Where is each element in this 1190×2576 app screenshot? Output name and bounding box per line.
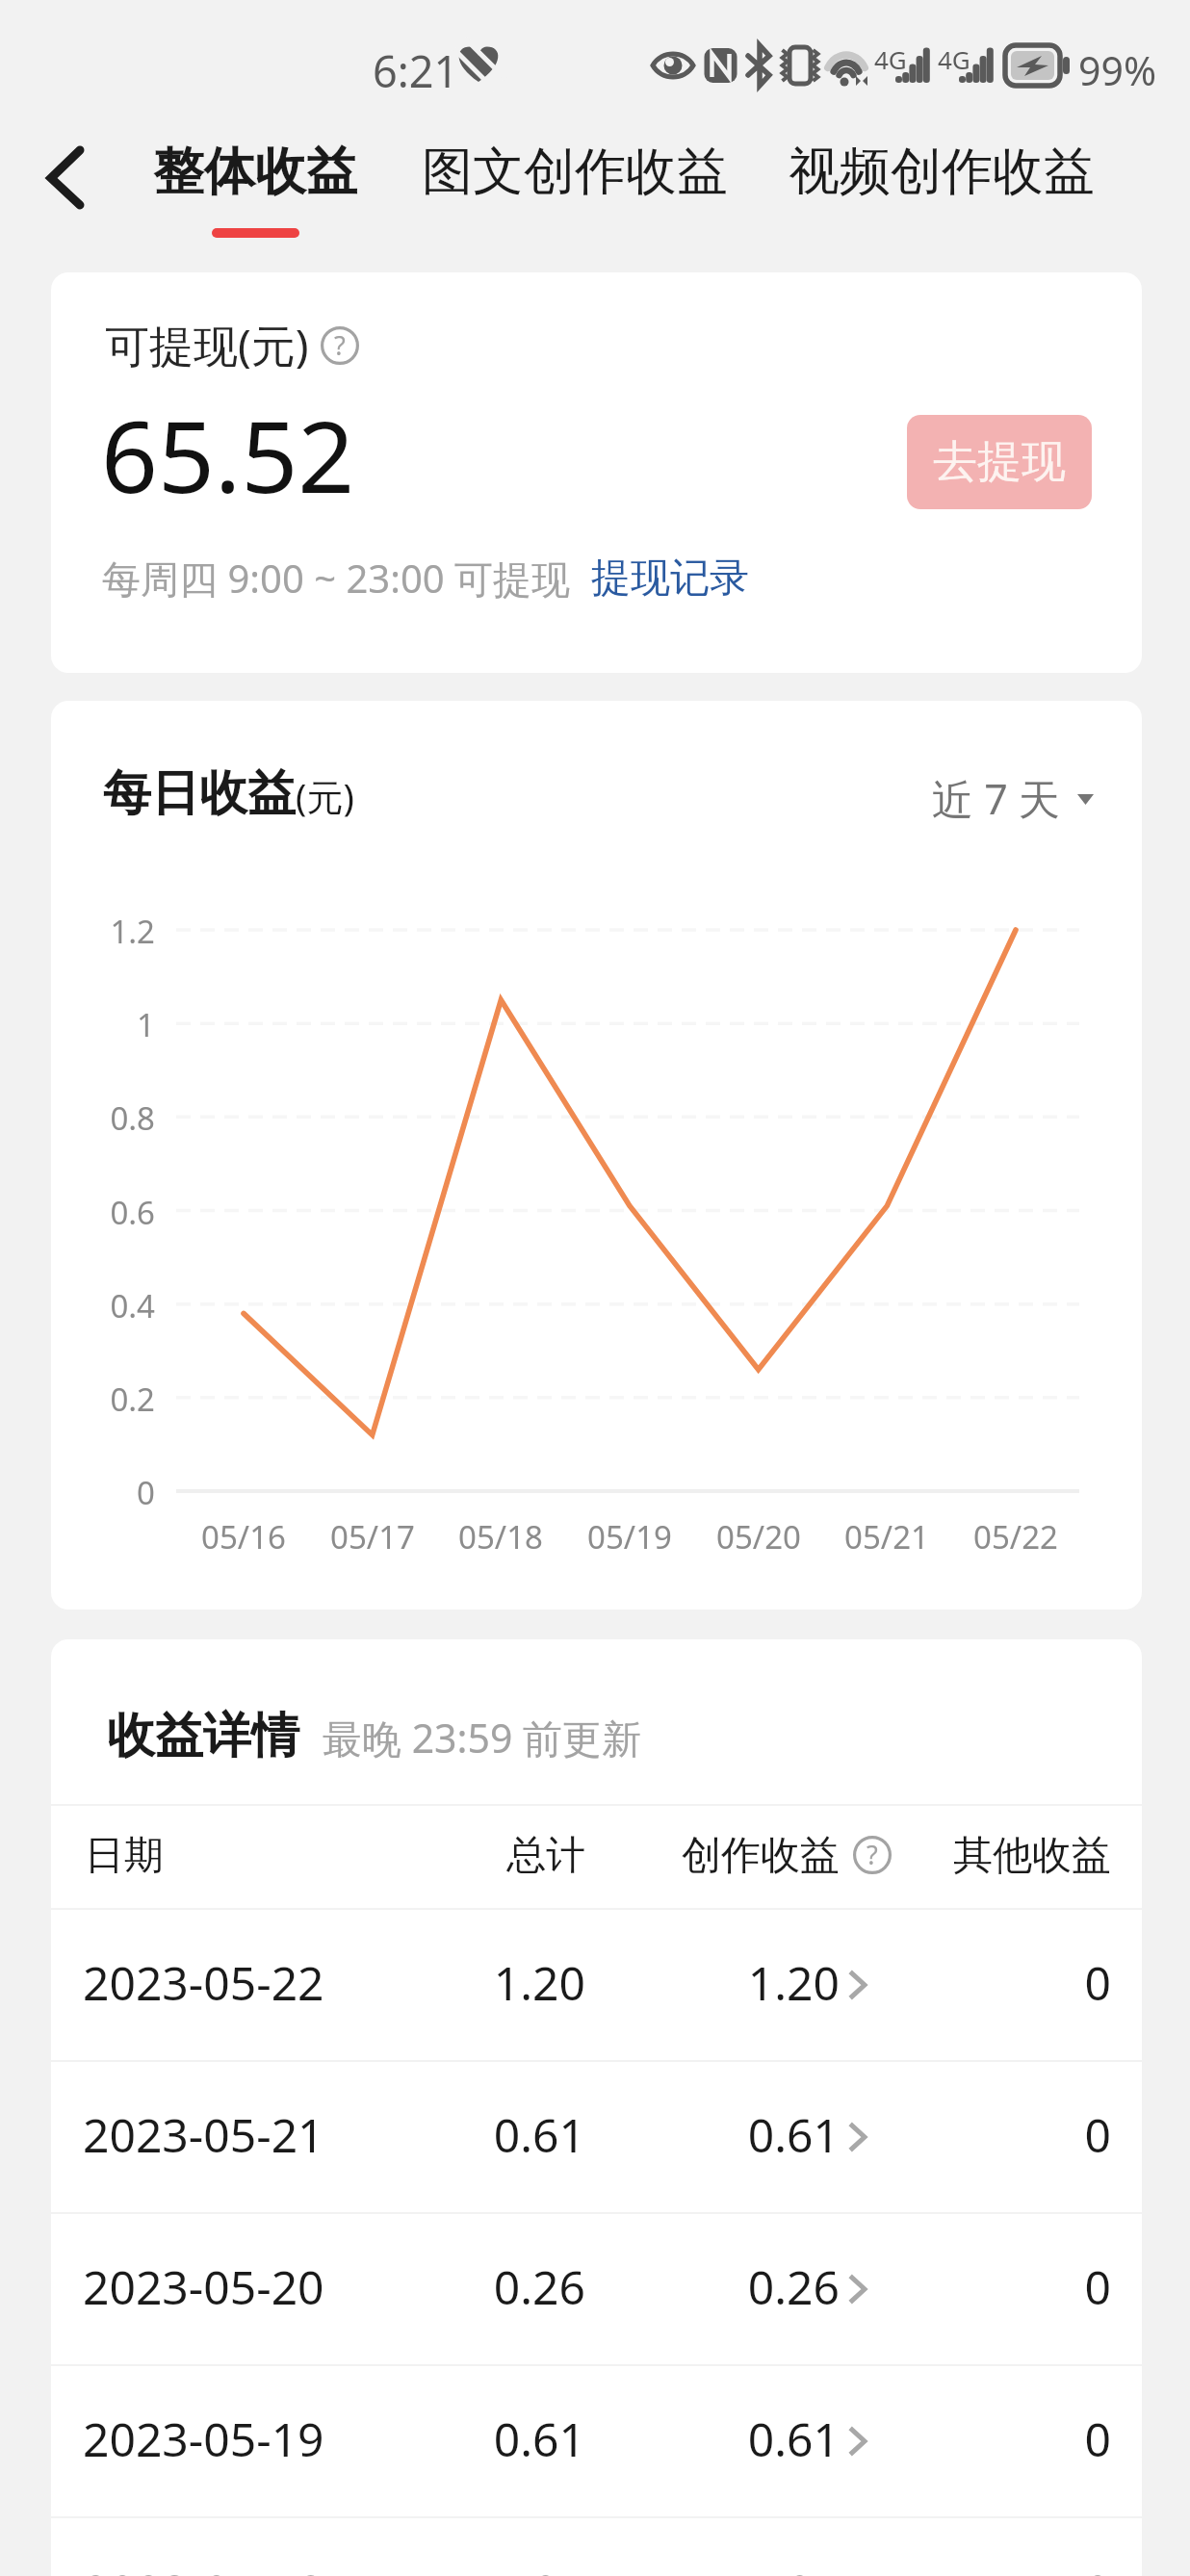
button[interactable]: Withdrawable balance info — [321, 326, 359, 365]
staticText: 总计 — [335, 1831, 585, 1881]
staticText: 6:21 — [373, 41, 459, 100]
staticText: 去提现 — [933, 434, 1066, 490]
staticText: 0.26 — [335, 2255, 585, 2318]
staticText: 收益详情 — [107, 1706, 299, 1766]
staticText: 05/20 — [682, 1515, 836, 1558]
staticText: 0.61 — [335, 2103, 585, 2166]
staticText: 0.2 — [51, 1378, 155, 1421]
staticText: 0 — [861, 1951, 1111, 2014]
button[interactable]: 整体收益 — [153, 140, 357, 247]
button[interactable]: 2023-05-19 — [51, 2366, 1142, 2516]
staticText: 05/21 — [810, 1515, 964, 1558]
staticText: 0.26 — [589, 2255, 840, 2318]
staticText: 05/19 — [553, 1515, 707, 1558]
staticText: 每日收益 — [103, 763, 296, 824]
button[interactable]: 2023-05-22 — [51, 1910, 1142, 2060]
button[interactable]: Back — [21, 134, 110, 222]
button[interactable]: 2023-05-21 — [51, 2062, 1142, 2212]
staticText: 1.20 — [335, 1951, 585, 2014]
staticText: 创作收益 — [589, 1831, 840, 1881]
staticText: 0 — [861, 2408, 1111, 2470]
staticText: 0 — [861, 2255, 1111, 2318]
staticText: 近 7 天 — [932, 770, 1060, 827]
staticText: 2023-05-22 — [83, 1951, 324, 2014]
staticText: 2023-05-18 — [83, 2560, 324, 2576]
staticText: 65.52 — [101, 387, 355, 522]
button[interactable]: 提现记录 — [591, 554, 749, 604]
staticText: 视频创作收益 — [789, 140, 1095, 204]
staticText: 0.6 — [51, 1191, 155, 1234]
staticText: 0.61 — [589, 2408, 840, 2470]
staticText: 4G — [938, 42, 970, 76]
staticText: 1.2 — [51, 910, 155, 953]
staticText: 99% — [1078, 43, 1156, 97]
staticText: 其他收益 — [861, 1831, 1111, 1881]
staticText: 05/16 — [167, 1515, 321, 1558]
staticText: 0.61 — [335, 2408, 585, 2470]
button[interactable]: Creation earnings info — [853, 1836, 892, 1874]
button[interactable]: 近 7 天 — [932, 770, 1094, 827]
staticText: (元) — [296, 771, 354, 821]
staticText: 图文创作收益 — [422, 140, 728, 204]
staticText: 2023-05-21 — [83, 2103, 324, 2166]
button[interactable]: 图文创作收益 — [422, 140, 728, 247]
staticText: 05/18 — [424, 1515, 578, 1558]
staticText: 1 — [51, 1003, 155, 1046]
staticText: 4G — [874, 42, 907, 76]
staticText: 0.61 — [589, 2103, 840, 2166]
staticText: 整体收益 — [153, 140, 357, 204]
staticText: 可提现(元) — [105, 315, 309, 375]
button[interactable]: 2023-05-20 — [51, 2214, 1142, 2364]
staticText: ? — [867, 1837, 878, 1872]
staticText: 0.4 — [51, 1284, 155, 1327]
staticText: 每周四 9:00 ~ 23:00 可提现 — [102, 552, 571, 605]
staticText: 1.20 — [589, 1951, 840, 2014]
staticText: 日期 — [85, 1831, 164, 1881]
staticText: 2023-05-19 — [83, 2408, 324, 2470]
staticText: 05/22 — [939, 1515, 1093, 1558]
staticText: 0.8 — [51, 1096, 155, 1140]
staticText: 05/17 — [296, 1515, 450, 1558]
staticText: 最晚 23:59 前更新 — [323, 1711, 642, 1765]
staticText: 2023-05-20 — [83, 2255, 324, 2318]
staticText: ? — [334, 327, 346, 363]
staticText: 0 — [51, 1471, 155, 1514]
button[interactable]: 视频创作收益 — [789, 140, 1095, 247]
button[interactable]: 去提现 — [907, 415, 1092, 509]
staticText: 0 — [861, 2103, 1111, 2166]
